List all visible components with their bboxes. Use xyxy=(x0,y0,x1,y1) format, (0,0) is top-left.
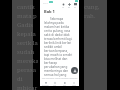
staticText: kepala xyxy=(17,30,36,38)
staticText: mata p xyxy=(17,12,37,20)
staticText: mereka xyxy=(17,57,38,65)
staticText: Bb xyxy=(68,6,71,8)
button[interactable]: Bb xyxy=(66,3,72,8)
button[interactable]: Aa xyxy=(60,3,66,8)
staticText: Seberapa lelahnya pada malam hari ketika… xyxy=(44,17,73,77)
staticText: Profil xyxy=(72,84,76,86)
staticText: di xyxy=(17,75,23,83)
staticText: Beranda xyxy=(42,84,49,86)
staticText: cung, xyxy=(84,3,100,11)
staticText: perasa xyxy=(17,66,37,74)
staticText: Gadis xyxy=(17,21,33,29)
staticText: rah. xyxy=(84,12,96,20)
staticText: Aa xyxy=(62,6,65,8)
staticText: 9:41 xyxy=(43,1,48,4)
staticText: serik la xyxy=(17,39,38,47)
staticText: Cari xyxy=(53,84,56,86)
button[interactable]: Account xyxy=(71,67,78,74)
staticText: Bab 1 xyxy=(44,9,55,14)
button[interactable]: Cari xyxy=(50,82,59,86)
staticText: Tap samping untuk pindah halaman xyxy=(40,77,79,80)
button[interactable]: Profil xyxy=(69,82,78,86)
staticText: sudah xyxy=(17,48,35,56)
staticText: cantik xyxy=(17,3,35,11)
staticText: mbicar xyxy=(17,84,38,90)
button[interactable]: Beranda xyxy=(41,82,50,86)
staticText: Cc xyxy=(74,6,76,8)
button[interactable]: Rak xyxy=(60,82,69,86)
staticText: Rak xyxy=(63,84,66,86)
button[interactable]: Cc xyxy=(72,3,78,8)
